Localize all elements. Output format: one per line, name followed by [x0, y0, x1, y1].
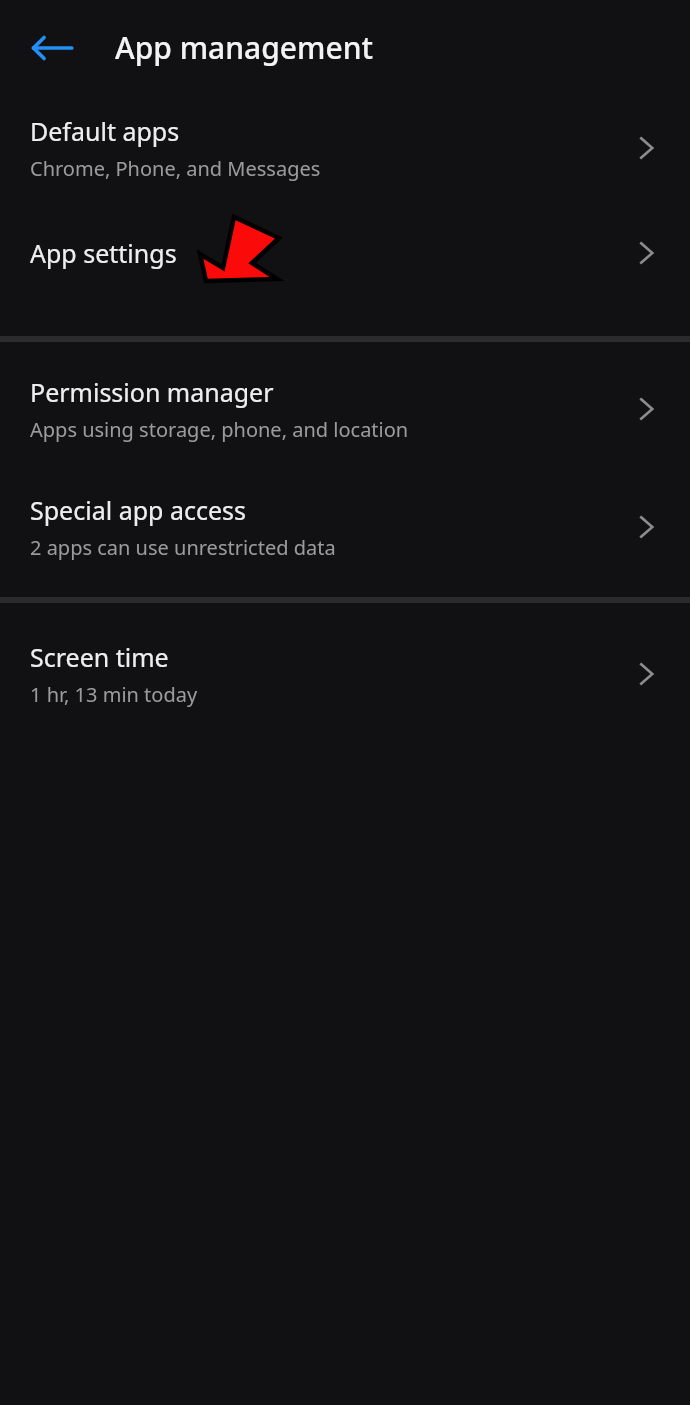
staticText: App management [115, 27, 373, 68]
button[interactable]: Permission manager [0, 350, 690, 468]
staticText: Screen time [30, 640, 169, 674]
staticText: Default apps [30, 114, 180, 148]
button[interactable]: Special app access [0, 468, 690, 586]
staticText: Permission manager [30, 375, 274, 409]
staticText: App settings [30, 236, 177, 270]
staticText: 2 apps can use unrestricted data [30, 534, 336, 561]
staticText: Apps using storage, phone, and location [30, 416, 409, 443]
button[interactable]: Screen time [0, 615, 690, 733]
button[interactable]: App settings [0, 200, 690, 305]
button[interactable]: Back [22, 18, 82, 78]
staticText: Chrome, Phone, and Messages [30, 155, 321, 182]
staticText: 1 hr, 13 min today [30, 681, 198, 708]
staticText: Special app access [30, 493, 246, 527]
button[interactable]: Default apps [0, 95, 690, 200]
